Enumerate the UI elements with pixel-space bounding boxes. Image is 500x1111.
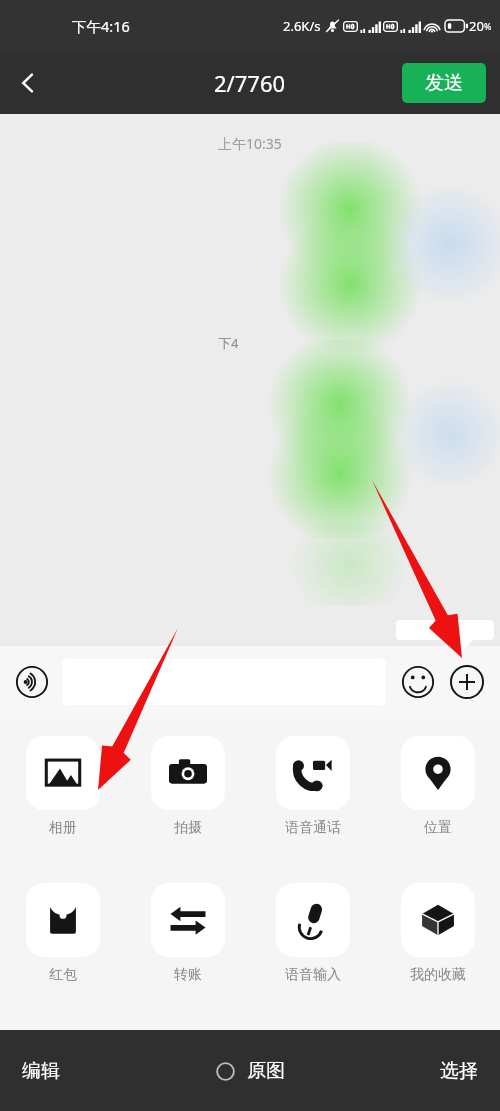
button[interactable]: 选择 [440,1059,478,1083]
staticText: 转账 [174,966,202,984]
button[interactable]: 位置 [375,736,500,883]
staticText: % [484,20,492,32]
button[interactable]: 红包 [0,883,125,1030]
button[interactable]: 语音输入 [250,883,375,1030]
button[interactable]: Back [0,55,56,111]
button[interactable]: 相册 [0,736,125,883]
staticText: 语音输入 [285,966,341,984]
staticText: 我的收藏 [410,966,466,984]
staticText: 20 [469,17,484,35]
staticText: 下午4:16 [72,16,130,36]
staticText: 发送 [425,71,463,95]
staticText: 红包 [49,966,77,984]
button[interactable]: 我的收藏 [375,883,500,1030]
staticText: 相册 [49,819,77,837]
button[interactable]: 语音通话 [250,736,375,883]
staticText: 2.6K/s [283,17,321,35]
staticText: 2/7760 [214,68,286,98]
staticText: 原图 [247,1059,285,1083]
button[interactable]: Emoji [396,660,440,704]
button[interactable]: 编辑 [22,1059,60,1083]
button[interactable]: More [444,659,490,705]
button[interactable]: 发送 [402,63,486,103]
staticText: 拍摄 [174,819,202,837]
button[interactable] [62,659,386,705]
staticText: 语音通话 [285,819,341,837]
button[interactable]: 原图 [216,1059,285,1083]
button[interactable]: 拍摄 [125,736,250,883]
staticText: 上午10:35 [218,134,282,153]
staticText: 下4 [218,334,239,352]
button[interactable]: 转账 [125,883,250,1030]
button[interactable]: Voice message [10,660,54,704]
staticText: 位置 [424,819,452,837]
